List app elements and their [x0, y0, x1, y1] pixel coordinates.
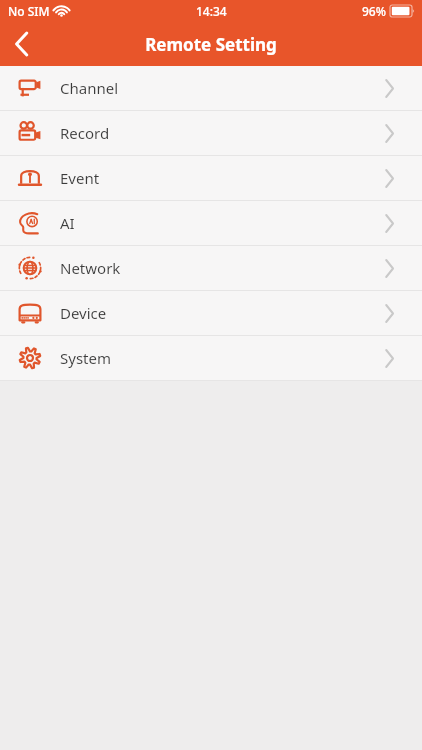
button[interactable]: Device: [0, 291, 422, 335]
staticText: System: [60, 348, 111, 368]
button[interactable]: Record: [0, 111, 422, 155]
staticText: 96%: [362, 3, 386, 19]
button[interactable]: Event: [0, 156, 422, 200]
staticText: AI: [60, 213, 75, 233]
button[interactable]: Channel: [0, 66, 422, 110]
button[interactable]: System: [0, 336, 422, 380]
button[interactable]: AI: [0, 201, 422, 245]
button[interactable]: Network: [0, 246, 422, 290]
staticText: Device: [60, 303, 107, 323]
staticText: Channel: [60, 78, 119, 98]
staticText: Record: [60, 123, 110, 143]
staticText: Remote Setting: [145, 33, 277, 56]
staticText: Event: [60, 168, 100, 188]
button[interactable]: Back: [0, 22, 44, 66]
staticText: Network: [60, 258, 121, 278]
staticText: No SIM: [8, 3, 50, 19]
staticText: 14:34: [196, 3, 227, 19]
